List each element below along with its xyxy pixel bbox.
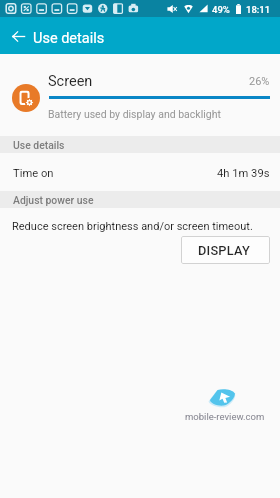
staticText: Adjust power use [13,194,94,206]
staticText: 4h 1m 39s [217,167,270,180]
staticText: Screen [48,73,93,90]
staticText: Use details [13,139,65,151]
button[interactable]: Navigate up [5,23,31,49]
staticText: 26% [249,75,270,88]
staticText: Battery used by display and backlight [48,108,221,120]
staticText: Time on [13,167,54,180]
staticText: Use details [33,30,105,47]
staticText: 18:11 [246,4,271,15]
staticText: Reduce screen brightness and/or screen t… [12,220,253,233]
button[interactable]: DISPLAY [181,236,270,264]
staticText: mobile-review.com [185,411,265,422]
staticText: 49% [212,4,230,15]
staticText: DISPLAY [198,243,250,258]
button[interactable]: Time on [0,154,280,192]
